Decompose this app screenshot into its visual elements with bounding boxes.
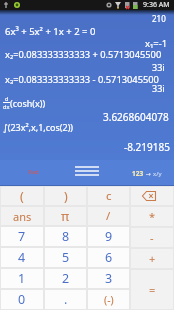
- button[interactable]: 0: [0, 289, 44, 310]
- staticText: +: [149, 251, 156, 266]
- staticText: x₁=-1: [145, 37, 168, 50]
- button[interactable]: .: [44, 289, 87, 310]
- button[interactable]: +: [130, 248, 174, 269]
- staticText: ∫(23x²,x,1,cos(2)): [3, 121, 74, 133]
- staticText: 7: [18, 228, 26, 245]
- button[interactable]: 123: [132, 169, 162, 178]
- staticText: *: [149, 209, 156, 224]
- button[interactable]: 7: [0, 226, 44, 247]
- button[interactable]: 8: [44, 226, 87, 247]
- button[interactable]: ): [44, 186, 87, 206]
- staticText: 0: [18, 291, 26, 308]
- staticText: 3.6268604078: [103, 110, 169, 124]
- staticText: 9:36 AM: [143, 0, 170, 10]
- staticText: π: [61, 208, 70, 225]
- staticText: 123: [132, 169, 144, 178]
- button[interactable]: 4: [0, 247, 44, 268]
- staticText: -: [150, 230, 154, 245]
- button[interactable]: 9: [87, 226, 130, 247]
- staticText: (: [20, 188, 24, 205]
- staticText: 3: [105, 270, 113, 287]
- staticText: 6x³ + 5x² + 1x + 2 = 0: [5, 25, 96, 38]
- button[interactable]: Rad: [28, 168, 39, 176]
- staticText: Rad: [28, 168, 39, 176]
- staticText: (-): [104, 293, 114, 307]
- button[interactable]: π: [44, 206, 87, 226]
- staticText: 8: [62, 228, 70, 245]
- button[interactable]: c: [87, 186, 130, 206]
- staticText: /: [106, 208, 111, 224]
- staticText: c: [106, 188, 112, 204]
- button[interactable]: 5: [44, 247, 87, 268]
- staticText: 6: [105, 249, 113, 266]
- staticText: dx: [3, 103, 10, 110]
- staticText: (cosh(x)): [10, 97, 46, 109]
- staticText: =: [149, 282, 156, 297]
- button[interactable]: ans: [0, 206, 44, 226]
- staticText: →: [144, 170, 153, 178]
- staticText: 9: [105, 228, 113, 245]
- staticText: .: [64, 291, 68, 308]
- staticText: x₃=0.083333333333 - 0.5713045500: [5, 73, 159, 86]
- staticText: 33i: [152, 61, 165, 73]
- staticText: d: [5, 95, 9, 102]
- button[interactable]: -: [130, 227, 174, 248]
- button[interactable]: [130, 186, 174, 206]
- staticText: 210: [152, 13, 166, 24]
- staticText: 1: [18, 270, 26, 287]
- button[interactable]: (: [0, 186, 44, 206]
- staticText: 2: [62, 270, 70, 287]
- button[interactable]: (-): [87, 289, 130, 310]
- button[interactable]: 3: [87, 268, 130, 289]
- staticText: x/y: [153, 170, 162, 178]
- staticText: 33i: [152, 82, 165, 94]
- button[interactable]: 2: [44, 268, 87, 289]
- button[interactable]: 1: [0, 268, 44, 289]
- button[interactable]: /: [87, 206, 130, 226]
- button[interactable]: =: [130, 269, 174, 310]
- staticText: ): [64, 188, 68, 205]
- staticText: 5: [62, 249, 70, 266]
- staticText: 4: [18, 249, 26, 266]
- staticText: -8.219185: [124, 140, 170, 154]
- button[interactable]: *: [130, 206, 174, 227]
- staticText: x₂=0.083333333333 + 0.5713045500: [5, 48, 162, 61]
- button[interactable]: 6: [87, 247, 130, 268]
- staticText: ans: [13, 209, 32, 224]
